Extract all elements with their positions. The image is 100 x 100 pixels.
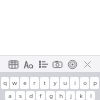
button[interactable]: Text format	[21, 57, 35, 71]
staticText: d	[29, 92, 33, 100]
button[interactable]: Markup	[65, 57, 79, 71]
staticText: w	[12, 79, 17, 87]
button[interactable]: q	[1, 77, 9, 89]
button[interactable]: Close keyboard	[80, 57, 94, 71]
staticText: p	[93, 79, 97, 87]
button[interactable]: g	[46, 91, 55, 100]
button[interactable]: j	[66, 91, 75, 100]
button[interactable]: t	[40, 77, 49, 89]
button[interactable]: a	[5, 91, 15, 100]
button[interactable]: u	[60, 77, 69, 89]
button[interactable]: Insert photo	[50, 57, 64, 71]
button[interactable]: Insert table	[6, 57, 20, 71]
staticText: o	[83, 79, 87, 87]
staticText: h	[59, 92, 63, 100]
staticText: l	[90, 92, 92, 100]
staticText: g	[49, 92, 53, 100]
staticText: i	[74, 79, 76, 87]
staticText: u	[63, 79, 67, 87]
staticText: y	[53, 79, 57, 87]
button[interactable]: l	[86, 91, 95, 100]
staticText: r	[33, 79, 36, 87]
button[interactable]: p	[90, 77, 99, 89]
button[interactable]: w	[10, 77, 19, 89]
button[interactable]: s	[16, 91, 25, 100]
button[interactable]: Paragraph style	[36, 57, 50, 71]
button[interactable]: f	[36, 91, 45, 100]
button[interactable]: r	[30, 77, 39, 89]
button[interactable]: k	[76, 91, 85, 100]
staticText: e	[23, 79, 27, 87]
staticText: k	[79, 92, 83, 100]
button[interactable]: h	[56, 91, 65, 100]
staticText: s	[19, 92, 22, 100]
staticText: a	[8, 92, 12, 100]
button[interactable]: o	[80, 77, 89, 89]
button[interactable]: e	[20, 77, 29, 89]
staticText: t	[43, 79, 46, 87]
staticText: q	[3, 79, 7, 87]
button[interactable]: d	[26, 91, 35, 100]
button[interactable]: y	[50, 77, 59, 89]
staticText: j	[70, 92, 72, 100]
button[interactable]: i	[70, 77, 79, 89]
staticText: f	[39, 92, 42, 100]
